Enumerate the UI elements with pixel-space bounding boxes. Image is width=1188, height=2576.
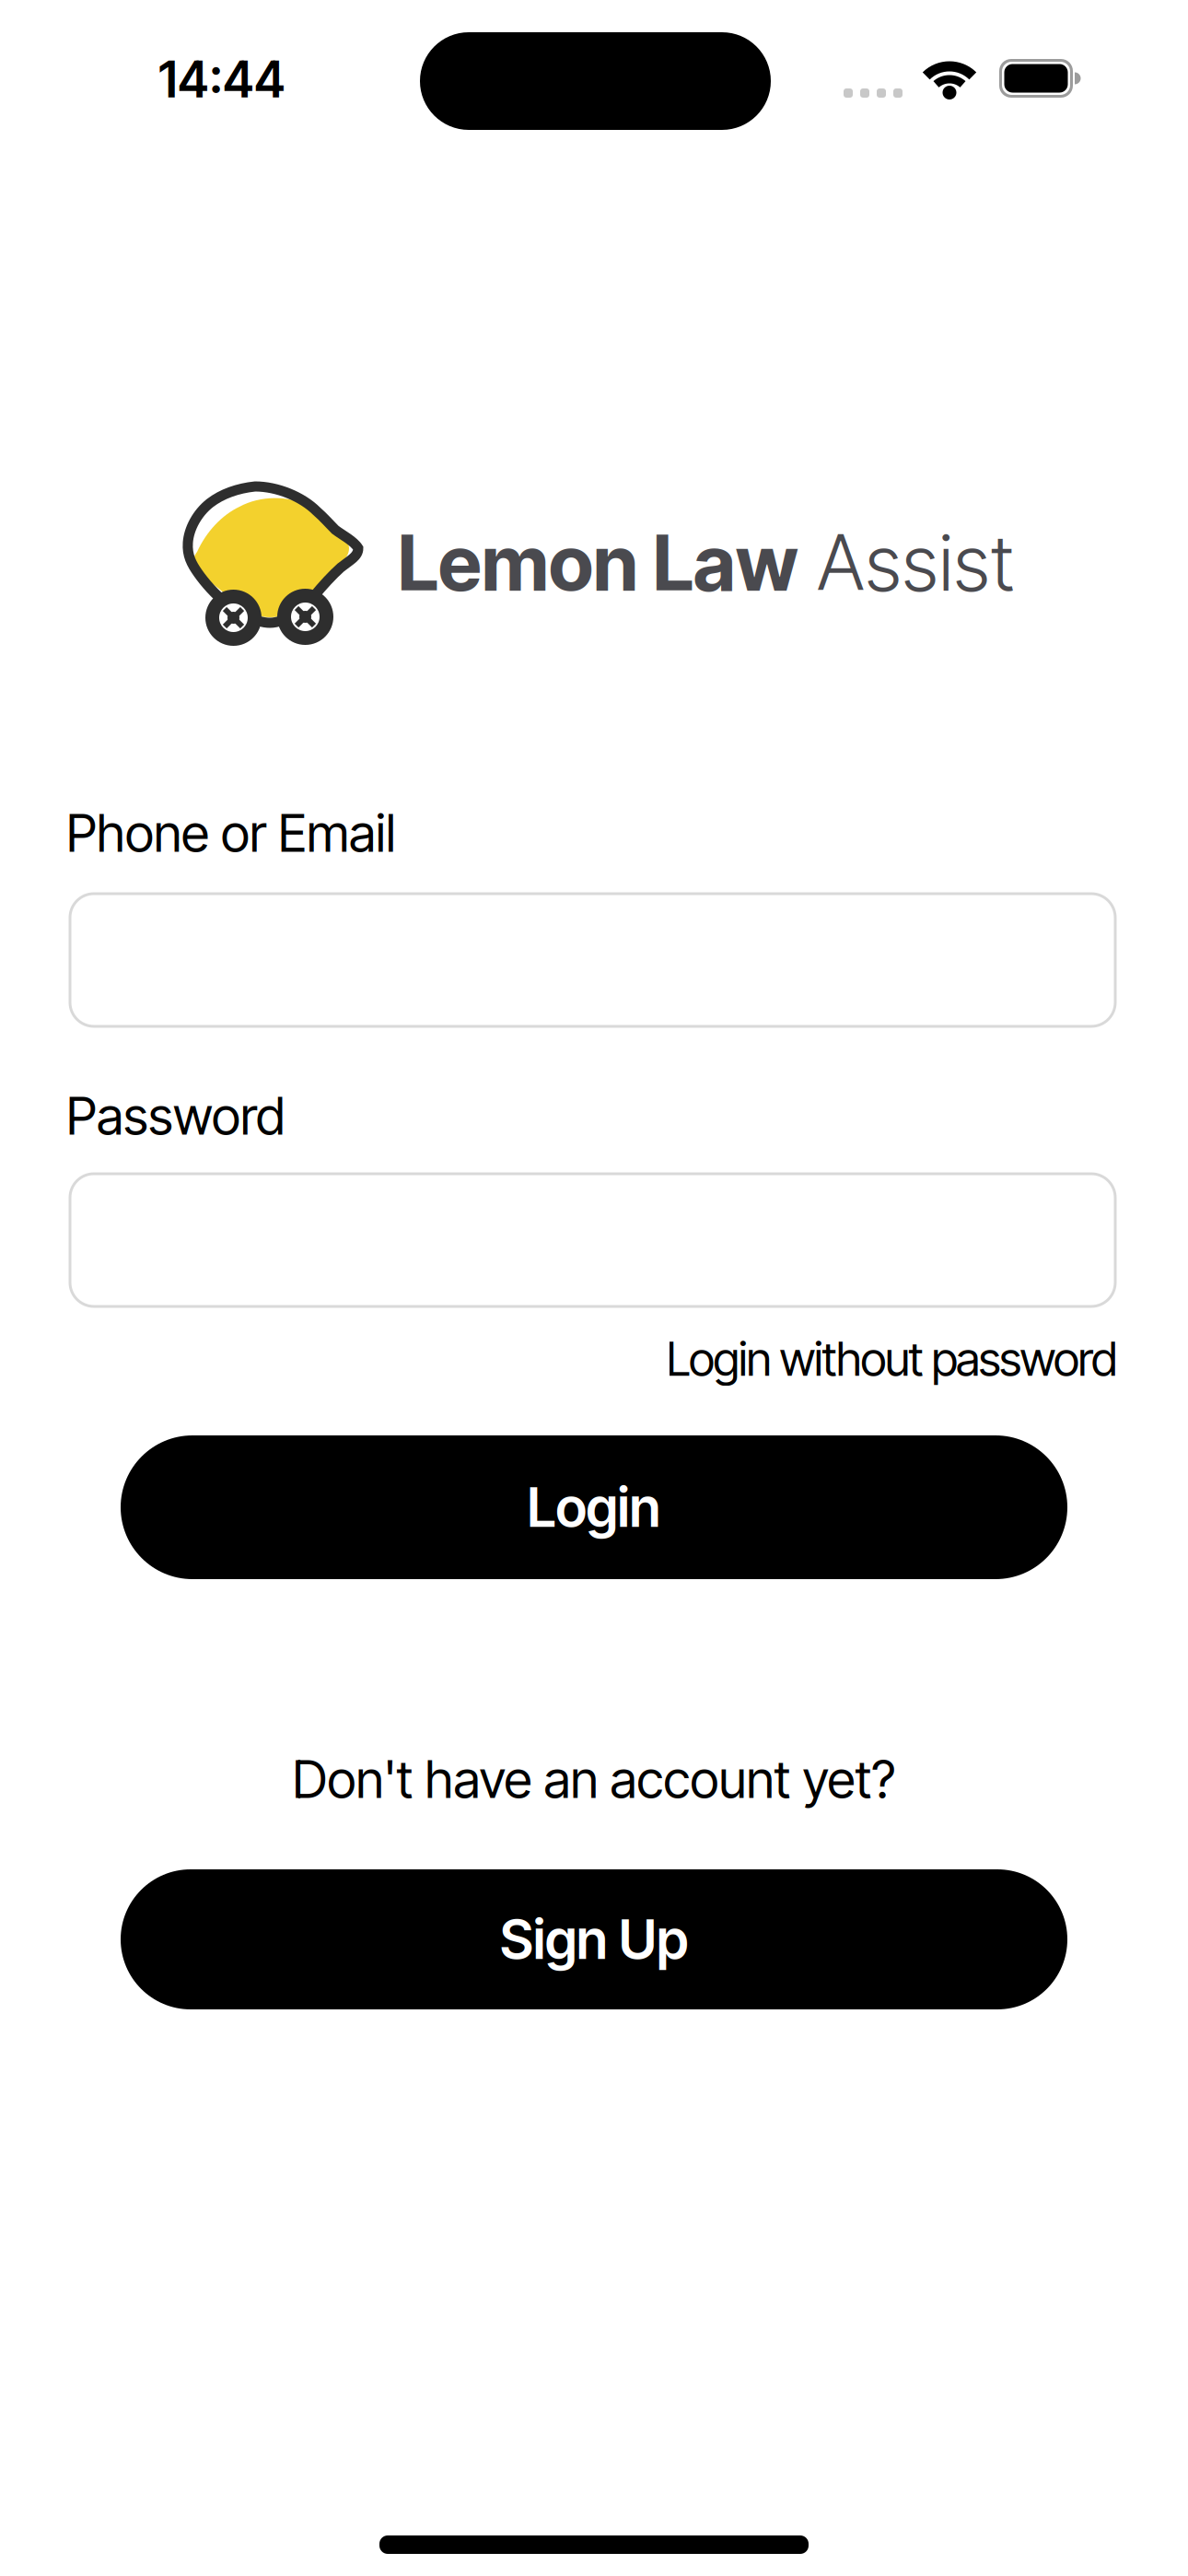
staticText: Login without password xyxy=(666,1331,1117,1386)
staticText: Login xyxy=(527,1475,661,1539)
staticText: Don't have an account yet? xyxy=(292,1749,896,1810)
staticText: Sign Up xyxy=(500,1907,688,1971)
staticText: Lemon Law xyxy=(398,518,798,608)
button[interactable]: Login without password xyxy=(666,1331,1117,1386)
staticText: Phone or Email xyxy=(66,802,396,863)
button[interactable]: Sign Up xyxy=(121,1869,1067,2009)
staticText: Assist xyxy=(817,518,1015,608)
button[interactable]: Login xyxy=(121,1435,1067,1579)
staticText: Password xyxy=(66,1085,285,1146)
staticText: 14:44 xyxy=(158,51,285,109)
